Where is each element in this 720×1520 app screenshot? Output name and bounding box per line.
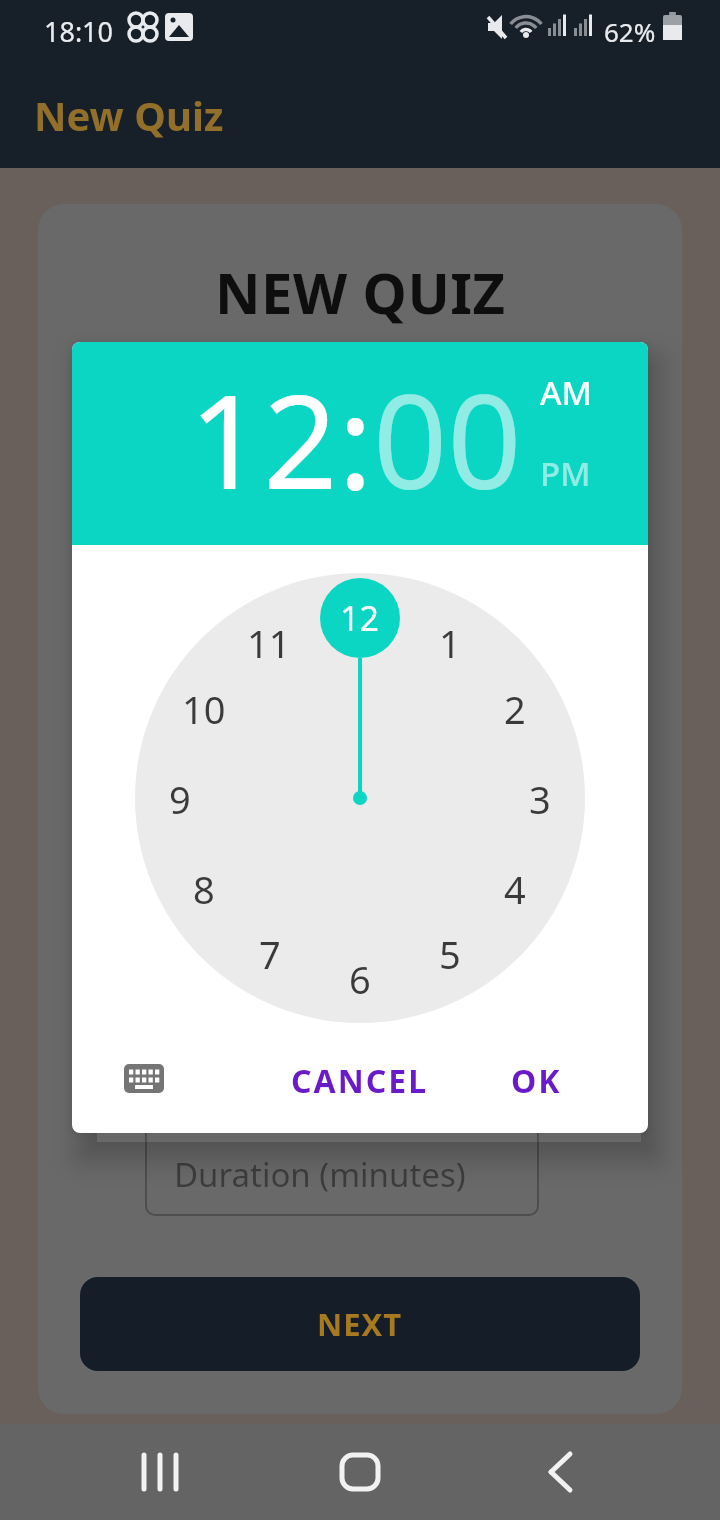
button[interactable]: 12 — [189, 350, 338, 527]
staticText: 10 — [182, 683, 226, 733]
button[interactable]: NEXT — [80, 1277, 640, 1371]
button[interactable] — [320, 1432, 400, 1512]
staticText: 9 — [169, 773, 191, 823]
button[interactable]: 00 — [373, 350, 522, 527]
staticText: 62% — [604, 14, 656, 49]
button[interactable]: PM — [540, 451, 591, 496]
staticText: 2 — [504, 683, 526, 733]
button[interactable] — [124, 1064, 164, 1094]
staticText: 11 — [247, 617, 291, 667]
button[interactable]: AM — [540, 370, 592, 415]
staticText: 6 — [349, 953, 371, 1003]
button[interactable] — [520, 1432, 600, 1512]
button[interactable]: CANCEL — [291, 1059, 429, 1103]
staticText: CANCEL — [291, 1059, 429, 1103]
staticText: 5 — [439, 928, 461, 978]
staticText: 7 — [259, 928, 281, 978]
staticText: 3 — [529, 773, 551, 823]
staticText: 4 — [504, 863, 526, 913]
button[interactable]: Duration (minutes) — [145, 1116, 539, 1216]
staticText: 12 — [340, 595, 379, 641]
staticText: OK — [511, 1059, 562, 1103]
button[interactable]: OK — [511, 1059, 562, 1103]
staticText: 1 — [439, 617, 461, 667]
staticText: Duration (minutes) — [174, 1152, 466, 1197]
staticText: 18:10 — [44, 13, 114, 50]
button[interactable] — [120, 1432, 200, 1512]
staticText: NEW QUIZ — [215, 254, 506, 324]
staticText: New Quiz — [34, 88, 224, 142]
staticText: 8 — [193, 863, 215, 913]
staticText: NEXT — [317, 1303, 403, 1345]
staticText: : — [338, 350, 373, 527]
